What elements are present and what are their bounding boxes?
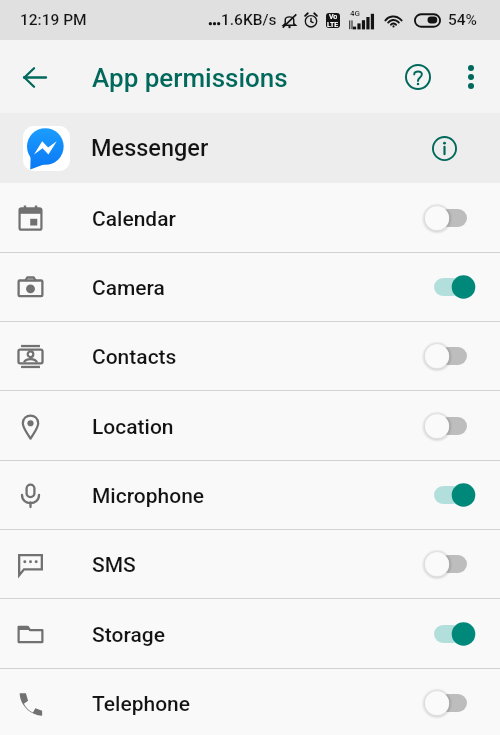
button[interactable]: Location — [0, 392, 500, 460]
button[interactable]: Storage — [0, 600, 500, 668]
button[interactable]: App info — [420, 124, 468, 172]
staticText: Vo — [329, 13, 338, 21]
button[interactable]: Help — [394, 53, 442, 101]
staticText: SMS — [92, 553, 136, 578]
button[interactable]: Telephone — [0, 669, 500, 735]
button[interactable]: SMS — [0, 530, 500, 598]
button[interactable] — [421, 194, 481, 242]
staticText: 1.6KB/s — [221, 11, 277, 29]
staticText: 12:19 PM — [20, 11, 87, 29]
staticText: 4G — [350, 9, 360, 18]
staticText: App permissions — [92, 63, 288, 93]
staticText: LTE — [327, 21, 339, 28]
button[interactable]: More options — [447, 53, 495, 101]
staticText: Telephone — [92, 692, 190, 717]
button[interactable] — [421, 610, 481, 658]
button[interactable]: Camera — [0, 253, 500, 321]
button[interactable] — [421, 540, 481, 588]
button[interactable]: Calendar — [0, 184, 500, 252]
button[interactable]: Microphone — [0, 461, 500, 529]
button[interactable]: Back — [11, 53, 59, 101]
staticText: Calendar — [92, 207, 176, 232]
staticText: Messenger — [91, 134, 209, 162]
button[interactable]: Contacts — [0, 322, 500, 390]
button[interactable] — [421, 402, 481, 450]
button[interactable] — [421, 263, 481, 311]
button[interactable] — [421, 332, 481, 380]
button[interactable]: Messenger — [0, 113, 500, 183]
button[interactable] — [421, 471, 481, 519]
staticText: Camera — [92, 276, 165, 301]
staticText: Contacts — [92, 345, 177, 370]
staticText: Location — [92, 415, 174, 440]
button[interactable] — [421, 679, 481, 727]
staticText: Microphone — [92, 484, 205, 509]
staticText: 54% — [448, 11, 478, 29]
staticText: Storage — [92, 623, 165, 648]
